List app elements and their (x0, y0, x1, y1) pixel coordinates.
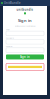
staticText: Email (6, 29, 9, 31)
staticText: unitbundle (16, 8, 33, 11)
staticText: Sign in (20, 55, 30, 59)
staticText: Password (6, 37, 14, 39)
staticText: Don't have an account? Sign up (14, 25, 35, 27)
staticText: Confirm (6, 46, 12, 47)
staticText: UnitBundle (4, 1, 21, 5)
staticText: Sign in (18, 18, 32, 23)
button[interactable]: Sign in (6, 54, 44, 59)
